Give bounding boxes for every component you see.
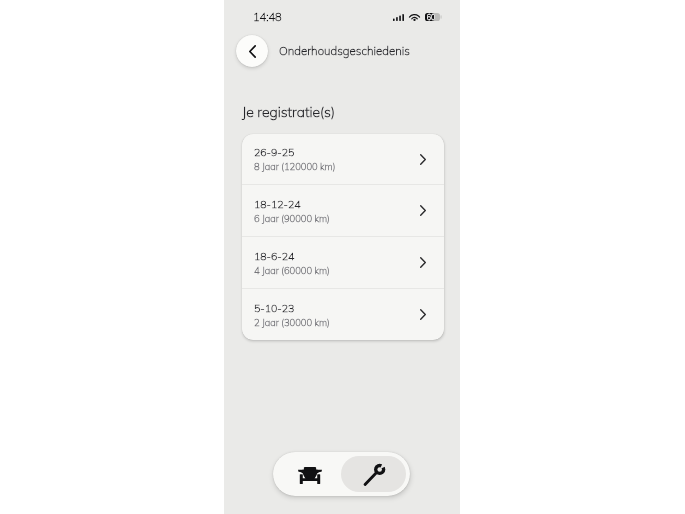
staticText: 4 Jaar (60000 km) (254, 265, 330, 277)
staticText: 18-12-24 (254, 197, 301, 210)
staticText: Je registratie(s) (242, 103, 335, 121)
staticText: 5-10-23 (254, 301, 295, 314)
button[interactable]: Back (236, 35, 268, 67)
button[interactable]: 26-9-25 (242, 134, 444, 184)
button[interactable]: 5-10-23 (242, 289, 444, 340)
staticText: 18-6-24 (254, 249, 295, 262)
staticText: 8 Jaar (120000 km) (254, 161, 336, 173)
staticText: 60 (424, 13, 438, 21)
button[interactable]: 18-12-24 (242, 185, 444, 236)
button[interactable]: Car (273, 452, 341, 496)
button[interactable]: Maintenance (341, 456, 406, 492)
staticText: 26-9-25 (254, 145, 295, 158)
staticText: 6 Jaar (90000 km) (254, 213, 330, 225)
staticText: 14:48 (253, 10, 282, 24)
staticText: 2 Jaar (30000 km) (254, 317, 330, 329)
button[interactable]: 18-6-24 (242, 237, 444, 288)
staticText: Onderhoudsgeschiedenis (279, 43, 410, 57)
